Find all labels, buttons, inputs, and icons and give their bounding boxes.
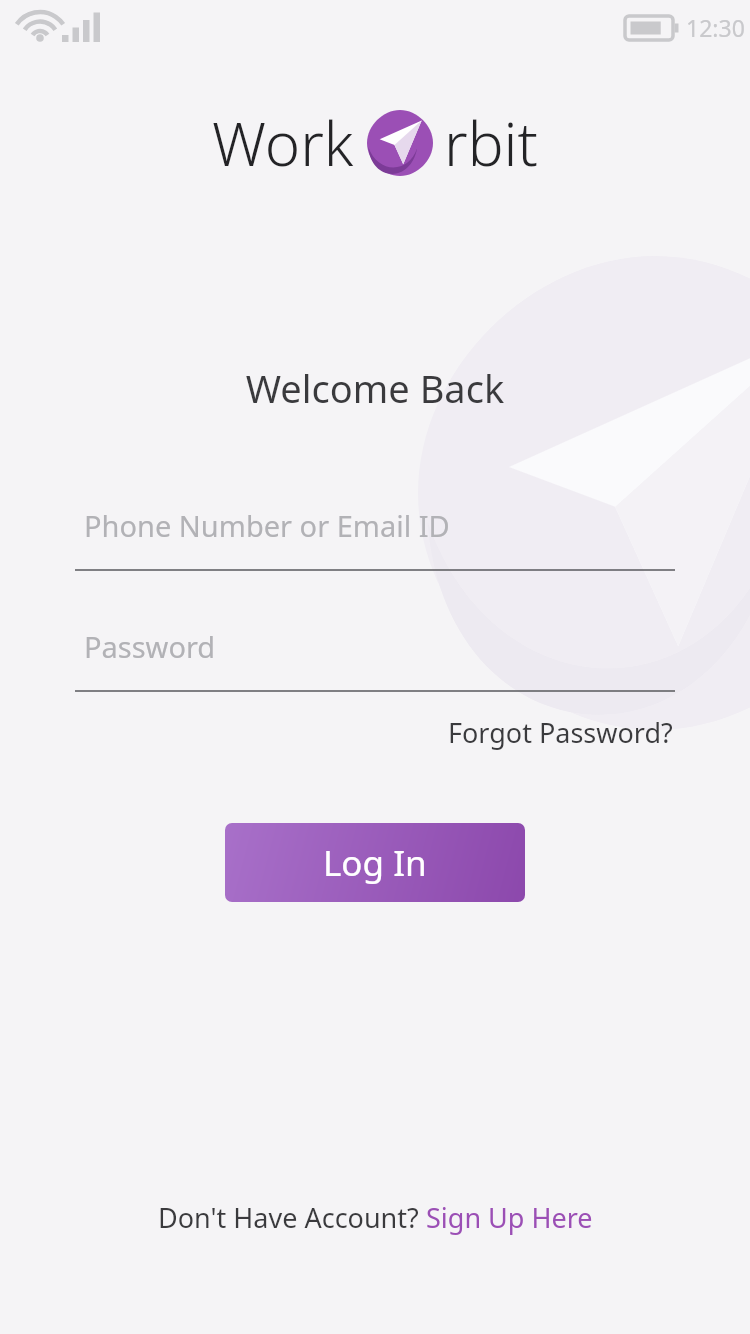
button[interactable]: Log In xyxy=(225,823,525,902)
staticText: Phone Number or Email ID xyxy=(84,506,450,545)
staticText: Log In xyxy=(323,839,427,887)
staticText: Sign Up Here xyxy=(426,1199,593,1236)
button[interactable]: Sign Up Here xyxy=(426,1199,593,1236)
staticText: Don't Have Account? xyxy=(158,1199,426,1236)
staticText: 12:30 xyxy=(686,12,745,43)
staticText: Welcome Back xyxy=(0,362,750,414)
button[interactable]: Forgot Password? xyxy=(446,706,675,759)
button[interactable]: Phone Number or Email ID xyxy=(75,506,675,571)
staticText: Password xyxy=(84,627,216,666)
staticText: Work xyxy=(212,102,354,184)
button[interactable]: Password xyxy=(75,627,675,692)
staticText: rbit xyxy=(444,102,538,184)
staticText: Forgot Password? xyxy=(448,714,673,751)
